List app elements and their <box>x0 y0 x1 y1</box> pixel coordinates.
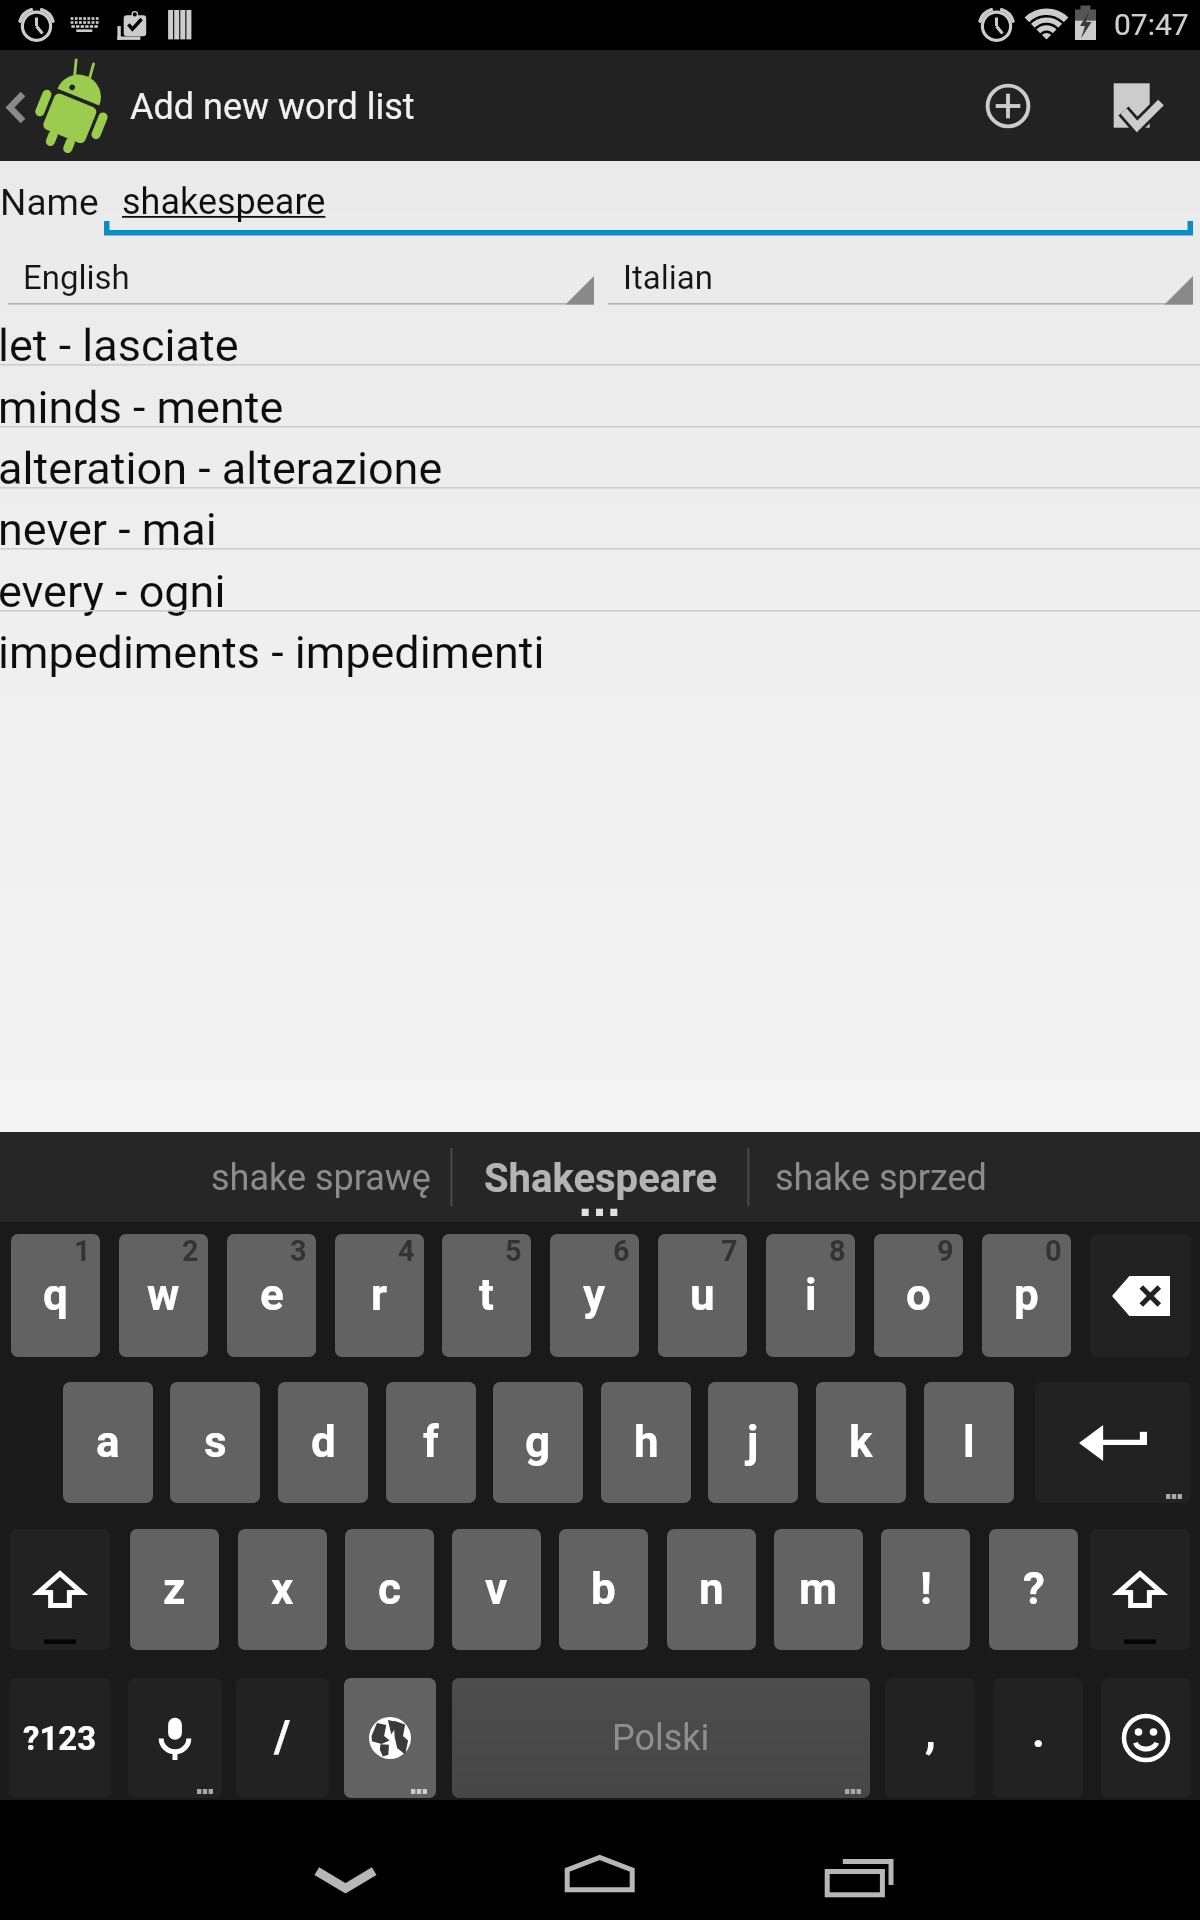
button[interactable]: never - mai <box>0 489 1200 550</box>
staticText: f <box>423 1416 439 1468</box>
button[interactable]: Italian <box>608 244 1193 305</box>
staticText: shake sprzed <box>775 1157 987 1199</box>
staticText: Polski <box>612 1717 710 1759</box>
staticText: Italian <box>623 258 713 297</box>
staticText: shake sprawę <box>211 1157 431 1199</box>
staticText: 8 <box>829 1234 846 1268</box>
button[interactable]: Save word list <box>1088 50 1200 161</box>
button[interactable]: y <box>550 1234 639 1357</box>
staticText: 1 <box>74 1234 91 1268</box>
button[interactable]: every - ogni <box>0 551 1200 612</box>
button[interactable]: alteration - alterazione <box>0 428 1200 489</box>
button[interactable]: Emoji <box>1101 1678 1191 1798</box>
button[interactable]: minds - mente <box>0 367 1200 428</box>
button[interactable]: x <box>238 1529 327 1650</box>
button[interactable]: k <box>816 1382 906 1503</box>
staticText: ! <box>920 1563 932 1615</box>
staticText: English <box>23 258 130 297</box>
staticText: v <box>485 1563 508 1615</box>
button[interactable]: Shift <box>10 1529 110 1650</box>
staticText: l <box>963 1416 975 1468</box>
staticText: 0 <box>1045 1234 1062 1268</box>
button[interactable]: r <box>335 1234 424 1357</box>
button[interactable]: a <box>63 1382 153 1503</box>
staticText: every - ogni <box>0 565 226 618</box>
staticText: q <box>43 1269 68 1321</box>
button[interactable]: Polski <box>452 1678 870 1798</box>
staticText: , <box>925 1706 936 1758</box>
staticText: r <box>371 1269 388 1321</box>
button[interactable]: j <box>708 1382 798 1503</box>
button[interactable]: impediments - impedimenti <box>0 612 1200 673</box>
button[interactable]: g <box>493 1382 583 1503</box>
staticText: d <box>311 1416 336 1468</box>
button[interactable]: t <box>442 1234 531 1357</box>
button[interactable]: . <box>993 1678 1083 1798</box>
staticText: t <box>479 1269 494 1321</box>
button[interactable]: shake sprawę <box>170 1132 471 1222</box>
staticText: ? <box>1023 1563 1045 1615</box>
button[interactable]: Home <box>505 1800 695 1920</box>
button[interactable]: English <box>8 244 594 305</box>
staticText: c <box>378 1563 401 1615</box>
button[interactable]: w <box>119 1234 208 1357</box>
staticText: u <box>690 1269 715 1321</box>
staticText: minds - mente <box>0 381 284 434</box>
staticText: x <box>271 1563 294 1615</box>
button[interactable]: q <box>11 1234 100 1357</box>
staticText: ?123 <box>23 1719 97 1758</box>
button[interactable]: z <box>130 1529 219 1650</box>
staticText: o <box>906 1269 931 1321</box>
button[interactable]: Change keyboard language <box>344 1678 436 1798</box>
button[interactable]: , <box>885 1678 975 1798</box>
button[interactable]: b <box>559 1529 648 1650</box>
staticText: 07:47 <box>1114 7 1189 42</box>
button[interactable]: Add word <box>952 50 1064 161</box>
button[interactable]: Backspace <box>1090 1234 1191 1357</box>
button[interactable]: n <box>667 1529 756 1650</box>
button[interactable]: ?123 <box>9 1678 111 1798</box>
button[interactable]: f <box>386 1382 476 1503</box>
staticText: 9 <box>937 1234 954 1268</box>
staticText: 7 <box>721 1234 738 1268</box>
button[interactable]: Recent apps <box>765 1800 955 1920</box>
button[interactable]: Voice input <box>128 1678 222 1798</box>
button[interactable]: ! <box>881 1529 970 1650</box>
staticText: a <box>96 1416 120 1468</box>
button[interactable]: h <box>601 1382 691 1503</box>
button[interactable]: ? <box>989 1529 1078 1650</box>
button[interactable]: Shift <box>1090 1529 1190 1650</box>
button[interactable]: s <box>170 1382 260 1503</box>
staticText: never - mai <box>0 503 217 556</box>
staticText: s <box>204 1416 227 1468</box>
button[interactable]: e <box>227 1234 316 1357</box>
button[interactable]: o <box>874 1234 963 1357</box>
button[interactable]: i <box>766 1234 855 1357</box>
staticText: z <box>163 1563 186 1615</box>
button[interactable]: Enter <box>1035 1382 1191 1503</box>
button[interactable]: p <box>982 1234 1071 1357</box>
button[interactable]: u <box>658 1234 747 1357</box>
staticText: . <box>1032 1706 1045 1758</box>
button[interactable]: Hide keyboard <box>250 1800 440 1920</box>
button[interactable] <box>0 50 128 161</box>
button[interactable]: shakespeare <box>104 161 1193 234</box>
button[interactable]: Shakespeare <box>460 1132 741 1222</box>
button[interactable]: c <box>345 1529 434 1650</box>
staticText: i <box>805 1269 817 1321</box>
staticText: g <box>525 1416 551 1468</box>
staticText: impediments - impedimenti <box>0 626 545 679</box>
staticText: m <box>799 1563 838 1615</box>
button[interactable]: / <box>236 1678 329 1798</box>
button[interactable]: l <box>924 1382 1014 1503</box>
button[interactable]: shake sprzed <box>740 1132 1021 1222</box>
button[interactable]: let - lasciate <box>0 305 1200 366</box>
button[interactable]: v <box>452 1529 541 1650</box>
staticText: k <box>849 1416 873 1468</box>
staticText: 3 <box>290 1234 307 1268</box>
staticText: p <box>1014 1269 1039 1321</box>
staticText: w <box>147 1269 180 1321</box>
button[interactable]: d <box>278 1382 368 1503</box>
staticText: n <box>699 1563 724 1615</box>
button[interactable]: m <box>774 1529 863 1650</box>
